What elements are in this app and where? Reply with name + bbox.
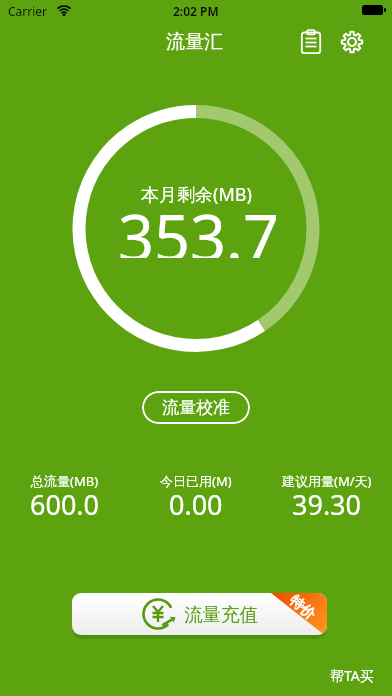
staticText: 建议用量(M/天)	[282, 472, 372, 490]
button[interactable]: 帮TA买	[326, 664, 378, 686]
staticText: 特价	[285, 593, 318, 624]
staticText: 本月剩余(MB)	[141, 182, 252, 207]
staticText: 2:02 PM	[173, 3, 219, 19]
staticText: 39.30	[292, 486, 362, 516]
staticText: 0.00	[169, 486, 223, 516]
button[interactable]: 流量校准	[142, 391, 250, 424]
staticText: 总流量(MB)	[31, 472, 99, 490]
staticText: 流量充值	[184, 603, 258, 626]
staticText: 今日已用(M)	[160, 472, 232, 490]
staticText: Carrier	[8, 3, 48, 19]
button[interactable]	[338, 27, 365, 57]
button[interactable]: 流量充值	[72, 593, 327, 635]
button[interactable]	[296, 27, 325, 57]
staticText: 流量汇	[166, 30, 223, 54]
staticText: 流量校准	[162, 397, 230, 418]
staticText: 帮TA买	[330, 666, 374, 685]
staticText: 353.7	[118, 194, 280, 258]
staticText: 600.0	[30, 486, 100, 516]
